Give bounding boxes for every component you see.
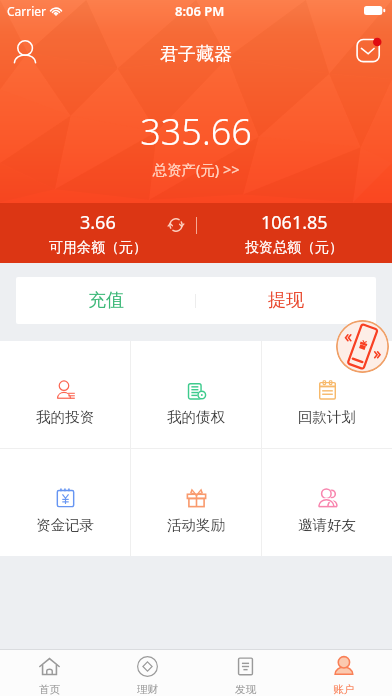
button[interactable]: 活动奖励 — [131, 449, 261, 556]
staticText: 回款计划 — [298, 408, 356, 426]
button[interactable]: 1061.85 — [196, 203, 392, 263]
staticText: 335.66 — [0, 107, 392, 156]
staticText: 投资总额（元） — [245, 239, 343, 257]
staticText: 活动奖励 — [167, 516, 225, 534]
staticText: 3.66 — [80, 210, 116, 235]
button[interactable]: Refresh — [164, 213, 188, 237]
button[interactable]: 理财 — [98, 650, 196, 696]
staticText: 8:06 PM — [175, 2, 225, 20]
button[interactable]: 邀请好友 — [262, 449, 392, 556]
button[interactable]: 我的投资 — [0, 341, 130, 448]
staticText: 资金记录 — [36, 516, 94, 534]
button[interactable]: 我的债权 — [131, 341, 261, 448]
button[interactable]: 资金记录 — [0, 449, 130, 556]
staticText: 我的债权 — [167, 408, 225, 426]
button[interactable]: Shake for gift — [336, 320, 389, 373]
button[interactable]: 提现 — [196, 277, 376, 324]
staticText: Carrier — [7, 3, 47, 19]
staticText: 发现 — [235, 683, 256, 696]
button[interactable]: Profile — [8, 34, 42, 68]
staticText: 1061.85 — [261, 210, 328, 235]
staticText: 君子藏器 — [160, 43, 232, 66]
button[interactable]: 首页 — [0, 650, 98, 696]
button[interactable]: 充值 — [16, 277, 195, 324]
button[interactable]: 账户 — [294, 650, 392, 696]
staticText: 首页 — [39, 683, 60, 696]
staticText: 可用余额（元） — [49, 239, 147, 257]
button[interactable]: 3.66 — [0, 203, 196, 263]
staticText: 账户 — [333, 683, 354, 696]
staticText: 我的投资 — [36, 408, 94, 426]
staticText: 充值 — [88, 289, 124, 312]
button[interactable]: Messages — [352, 34, 386, 68]
button[interactable]: 回款计划 — [262, 341, 392, 448]
staticText: 总资产(元) >> — [0, 159, 392, 179]
staticText: 提现 — [268, 289, 304, 312]
staticText: 邀请好友 — [298, 516, 356, 534]
staticText: 理财 — [137, 683, 158, 696]
button[interactable]: 发现 — [196, 650, 294, 696]
